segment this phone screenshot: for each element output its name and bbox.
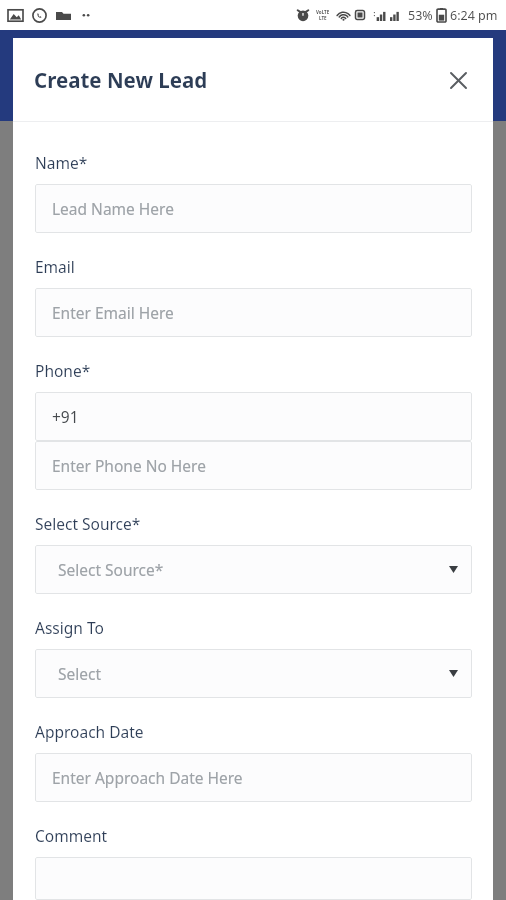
staticText: Email — [35, 256, 75, 277]
staticText: Approach Date — [35, 721, 144, 742]
staticText: Assign To — [35, 617, 104, 638]
staticText: Select Source* — [58, 559, 164, 580]
staticText: Select — [58, 663, 102, 684]
staticText: Name* — [35, 152, 88, 173]
button[interactable]: +91 — [35, 392, 472, 441]
button[interactable]: Enter Email Here — [35, 288, 472, 337]
staticText: 6:24 pm — [450, 7, 498, 24]
staticText: Select Source* — [35, 513, 141, 534]
staticText: Create New Lead — [34, 66, 208, 94]
button[interactable]: Select Source* — [35, 545, 472, 594]
staticText: +91 — [52, 406, 79, 427]
staticText: Enter Approach Date Here — [52, 767, 243, 788]
staticText: VoLTE — [316, 9, 330, 15]
staticText: LTE — [319, 15, 327, 21]
staticText: 53% — [408, 7, 433, 24]
staticText: Enter Phone No Here — [52, 455, 206, 476]
staticText: Enter Email Here — [52, 302, 174, 323]
staticText: Comment — [35, 825, 108, 846]
button[interactable]: Lead Name Here — [35, 184, 472, 233]
staticText: Lead Name Here — [52, 198, 174, 219]
button[interactable] — [35, 857, 472, 900]
button[interactable]: Enter Approach Date Here — [35, 753, 472, 802]
staticText: Phone* — [35, 360, 91, 381]
button[interactable]: Select — [35, 649, 472, 698]
button[interactable]: Enter Phone No Here — [35, 441, 472, 490]
button[interactable]: Close — [441, 63, 475, 97]
